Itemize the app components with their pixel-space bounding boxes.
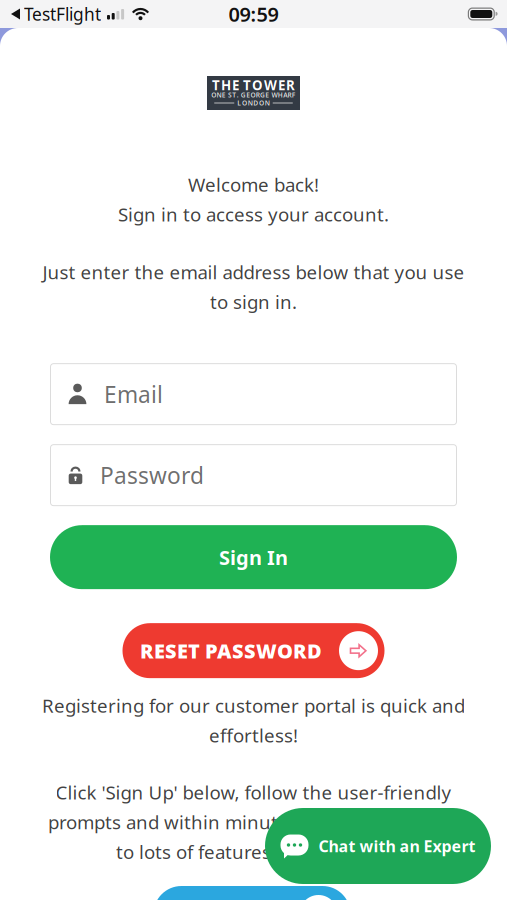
staticText: Chat with an Expert	[318, 835, 475, 857]
staticText: RESET PASSWORD	[140, 637, 322, 664]
staticText: T	[212, 76, 220, 94]
staticText: S	[228, 91, 232, 99]
staticText: O	[250, 91, 255, 99]
staticText: prompts and within minutes you'll have a…	[48, 809, 459, 834]
staticText: O	[259, 99, 264, 107]
button[interactable]: Password	[50, 444, 457, 506]
staticText: G	[260, 91, 265, 99]
staticText: O	[242, 99, 247, 107]
staticText: E	[278, 76, 285, 94]
staticText: E	[246, 91, 250, 99]
staticText: G	[241, 91, 246, 99]
staticText: N	[248, 99, 253, 107]
staticText: R	[256, 91, 260, 99]
staticText: N	[265, 99, 270, 107]
staticText: W	[264, 76, 277, 94]
staticText: effortless!	[209, 723, 298, 748]
staticText: E	[232, 76, 239, 94]
staticText: 09:59	[228, 1, 278, 27]
staticText: Sign In	[219, 544, 288, 570]
staticText: W	[272, 91, 278, 99]
staticText: F	[292, 91, 296, 99]
staticText: O	[252, 76, 263, 94]
staticText: D	[253, 99, 258, 107]
button[interactable]: Sign Up	[153, 886, 350, 900]
staticText: E	[265, 91, 269, 99]
button[interactable]: Chat with an Expert	[265, 808, 491, 884]
staticText: Email	[104, 379, 163, 409]
staticText: Welcome back!	[188, 172, 319, 197]
staticText: to lots of features and benefits.	[116, 839, 391, 864]
staticText: H	[221, 76, 231, 94]
staticText: N	[217, 91, 222, 99]
staticText: R	[287, 91, 291, 99]
staticText: H	[278, 91, 283, 99]
staticText: Sign in to access your account.	[118, 202, 389, 227]
staticText: O	[211, 91, 216, 99]
staticText: T	[232, 91, 236, 99]
button[interactable]: Back to TestFlight	[11, 2, 101, 25]
staticText: E	[222, 91, 226, 99]
staticText: Registering for our customer portal is q…	[42, 693, 465, 718]
button[interactable]: RESET PASSWORD	[122, 623, 384, 678]
button[interactable]: Sign In	[50, 525, 457, 589]
staticText: A	[283, 91, 287, 99]
staticText: TestFlight	[24, 2, 101, 25]
staticText: to sign in.	[210, 289, 297, 314]
staticText: T	[243, 76, 251, 94]
staticText: Click 'Sign Up' below, follow the user-f…	[55, 780, 451, 804]
staticText: Password	[100, 460, 204, 490]
staticText: R	[286, 76, 295, 94]
staticText: Just enter the email address below that …	[42, 260, 464, 284]
staticText: L	[237, 99, 241, 107]
button[interactable]: Email	[50, 363, 457, 425]
staticText: .	[237, 91, 239, 99]
